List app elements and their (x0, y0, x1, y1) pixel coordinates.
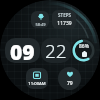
button[interactable]: Heart rate 79 (58, 67, 81, 90)
staticText: 09 (10, 38, 35, 63)
staticText: 79 (67, 80, 73, 87)
button[interactable]: Calendar event (26, 68, 48, 89)
staticText: 86% (79, 43, 89, 50)
button[interactable]: 22 (41, 38, 71, 63)
staticText: STEPS (58, 12, 71, 18)
staticText: 11:00AM (28, 81, 46, 87)
staticText: 22 (45, 38, 67, 63)
button[interactable]: Battery 86 percent (71, 38, 96, 63)
button[interactable]: STEPS (52, 10, 76, 29)
button[interactable]: Weather (31, 11, 49, 28)
button[interactable]: 09 (5, 38, 40, 63)
staticText: 58:49 (35, 22, 46, 27)
staticText: 11739 (57, 20, 72, 27)
